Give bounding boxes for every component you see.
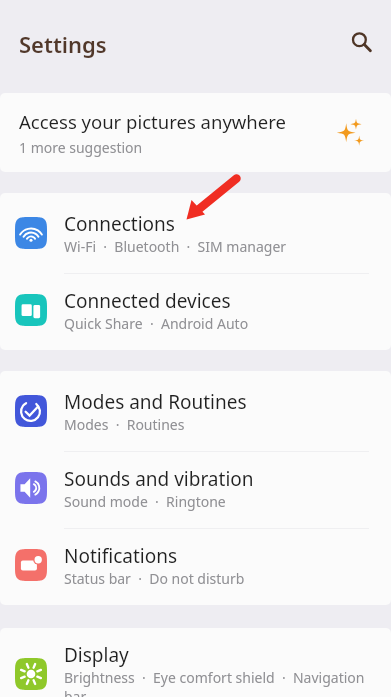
staticText: Brightness · Eye comfort shield · Naviga…: [64, 668, 373, 697]
button[interactable]: Access your pictures anywhere: [0, 93, 391, 172]
staticText: Sound mode · Ringtone: [64, 492, 226, 511]
staticText: Connected devices: [64, 288, 231, 314]
button[interactable]: Display: [0, 632, 391, 697]
staticText: Sounds and vibration: [64, 466, 254, 492]
staticText: Notifications: [64, 543, 178, 569]
button[interactable]: Connected devices: [0, 274, 391, 350]
staticText: Connections: [64, 211, 175, 237]
staticText: Modes · Routines: [64, 415, 185, 434]
button[interactable]: Search: [339, 22, 379, 62]
staticText: Wi-Fi · Bluetooth · SIM manager: [64, 237, 287, 256]
staticText: Modes and Routines: [64, 389, 247, 415]
button[interactable]: Sounds and vibration: [0, 452, 391, 528]
staticText: Display: [64, 642, 129, 668]
staticText: Quick Share · Android Auto: [64, 314, 249, 333]
staticText: Status bar · Do not disturb: [64, 569, 245, 588]
button[interactable]: Connections: [0, 197, 391, 273]
button[interactable]: Notifications: [0, 529, 391, 605]
staticText: Access your pictures anywhere: [19, 109, 286, 134]
staticText: Settings: [19, 29, 107, 59]
staticText: 1 more suggestion: [19, 138, 143, 157]
button[interactable]: Modes and Routines: [0, 375, 391, 451]
